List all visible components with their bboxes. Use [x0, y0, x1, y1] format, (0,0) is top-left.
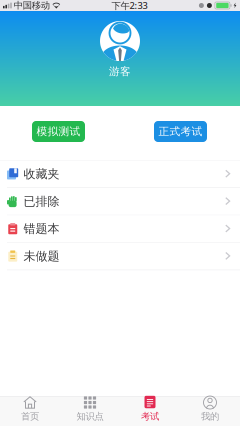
button[interactable]: 首页	[0, 397, 60, 426]
staticText: 未做题	[23, 249, 59, 263]
button[interactable]: 未做题	[0, 243, 240, 270]
staticText: 错题本	[23, 221, 59, 236]
staticText: 中国移动	[14, 0, 50, 11]
staticText: 正式考试	[158, 125, 202, 138]
button[interactable]: 考试	[120, 397, 180, 426]
button[interactable]: 我的	[180, 397, 240, 426]
staticText: 已排除	[23, 194, 59, 209]
staticText: 模拟测试	[36, 125, 80, 138]
staticText: 游客	[109, 65, 131, 78]
button[interactable]: 正式考试	[154, 121, 207, 142]
staticText: 考试	[141, 411, 159, 422]
button[interactable]: 模拟测试	[32, 121, 85, 142]
staticText: 下午2:33	[112, 0, 148, 12]
button[interactable]: 收藏夹	[0, 161, 240, 188]
button[interactable]: 错题本	[0, 215, 240, 243]
staticText: 首页	[21, 411, 39, 422]
button[interactable]: 已排除	[0, 188, 240, 215]
button[interactable]: 知识点	[60, 397, 120, 426]
staticText: 知识点	[76, 411, 103, 422]
staticText: 收藏夹	[23, 167, 59, 181]
staticText: 我的	[201, 411, 219, 422]
